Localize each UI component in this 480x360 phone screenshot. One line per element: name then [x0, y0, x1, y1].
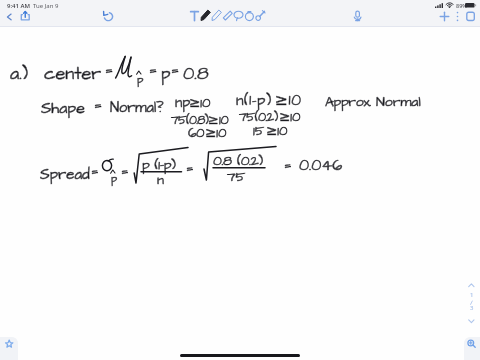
staticText: ≥10: [208, 111, 229, 129]
staticText: Spread: [40, 164, 90, 185]
staticText: p: [111, 171, 118, 186]
staticText: =: [171, 59, 179, 81]
button[interactable]: Page 1 of 3: [463, 279, 479, 325]
staticText: 75(0.8): [171, 112, 209, 129]
staticText: Normal?: [110, 98, 164, 118]
staticText: 60: [188, 124, 204, 143]
button[interactable]: Text tool: [188, 9, 201, 22]
staticText: Spread: [40, 164, 90, 185]
staticText: 9:41 AM: [7, 2, 31, 10]
staticText: 75(0.2): [239, 108, 278, 126]
button[interactable]: More options: [451, 10, 464, 23]
staticText: a.): [10, 61, 29, 86]
staticText: np: [175, 93, 191, 113]
staticText: =: [284, 155, 292, 176]
staticText: 75(0.8): [171, 112, 209, 129]
staticText: =: [105, 59, 113, 81]
staticText: n(1-p): [236, 90, 272, 111]
staticText: ≥10: [189, 94, 211, 113]
staticText: ≥10: [266, 122, 288, 141]
staticText: ≥10: [279, 108, 301, 127]
staticText: Shape: [41, 97, 85, 119]
staticText: =: [171, 59, 179, 81]
button[interactable]: Pages: [464, 9, 477, 22]
staticText: ≥10: [205, 124, 227, 143]
staticText: p (1-p): [142, 155, 176, 174]
staticText: ≥10: [279, 108, 301, 127]
staticText: center: [44, 61, 102, 86]
staticText: =: [105, 59, 113, 81]
button[interactable]: Back: [3, 10, 16, 23]
staticText: p: [161, 62, 171, 86]
staticText: ≥10: [275, 90, 302, 112]
button[interactable]: Add: [438, 10, 451, 23]
staticText: n: [157, 170, 164, 189]
staticText: =: [284, 155, 292, 176]
staticText: p (1-p): [142, 155, 176, 174]
button[interactable]: Highlighter: [210, 9, 223, 22]
staticText: 1: [470, 291, 474, 299]
staticText: =: [121, 161, 129, 182]
staticText: a.): [10, 61, 29, 86]
button[interactable]: Pen: [199, 9, 212, 22]
staticText: 60: [188, 124, 204, 143]
staticText: p: [137, 72, 144, 88]
staticText: =: [186, 158, 194, 179]
staticText: =: [149, 59, 157, 81]
button[interactable]: Zoom in: [464, 337, 480, 360]
staticText: p: [137, 72, 144, 88]
staticText: p: [161, 62, 171, 86]
staticText: 3: [470, 304, 474, 312]
staticText: 0.046: [299, 154, 343, 176]
staticText: 15: [253, 122, 265, 141]
staticText: =: [91, 161, 99, 182]
staticText: =: [121, 161, 129, 182]
staticText: Tue Jan 9: [33, 2, 59, 10]
staticText: center: [44, 61, 102, 86]
staticText: ≥10: [189, 94, 211, 113]
staticText: Normal: [376, 92, 421, 111]
staticText: =: [94, 94, 102, 116]
staticText: 89%: [456, 2, 467, 9]
button[interactable]: Microphone: [351, 9, 364, 22]
staticText: ≥10: [208, 111, 229, 129]
staticText: Approx.: [325, 92, 371, 111]
staticText: 0.8: [183, 61, 209, 86]
staticText: 0.046: [299, 154, 343, 176]
button[interactable]: Lasso select: [232, 9, 245, 22]
staticText: 75(0.2): [239, 108, 278, 126]
staticText: 0.8 (0.2): [213, 151, 263, 170]
button[interactable]: Eraser: [221, 9, 234, 22]
staticText: Shape: [41, 97, 85, 119]
staticText: =: [186, 158, 194, 179]
button[interactable]: Share: [18, 8, 32, 22]
staticText: p: [111, 171, 118, 186]
staticText: =: [91, 161, 99, 182]
button[interactable]: Colour picker: [254, 9, 267, 22]
staticText: n: [157, 170, 164, 189]
button[interactable]: Undo: [102, 10, 115, 23]
staticText: Normal: [376, 92, 421, 111]
staticText: ≥10: [205, 124, 227, 143]
staticText: ≥10: [275, 90, 302, 112]
staticText: Normal?: [110, 98, 164, 118]
button[interactable]: Shape tool: [243, 9, 256, 22]
staticText: 0.8 (0.2): [213, 151, 263, 170]
staticText: ≥10: [266, 122, 288, 141]
staticText: 15: [253, 122, 265, 141]
staticText: n(1-p): [236, 90, 272, 111]
button[interactable]: Bookmark: [0, 337, 18, 360]
staticText: 75: [227, 167, 246, 186]
staticText: 0.8: [183, 61, 209, 86]
staticText: 75: [227, 167, 246, 186]
staticText: Approx.: [325, 92, 371, 111]
staticText: np: [175, 93, 191, 113]
staticText: =: [149, 59, 157, 81]
staticText: =: [94, 94, 102, 116]
